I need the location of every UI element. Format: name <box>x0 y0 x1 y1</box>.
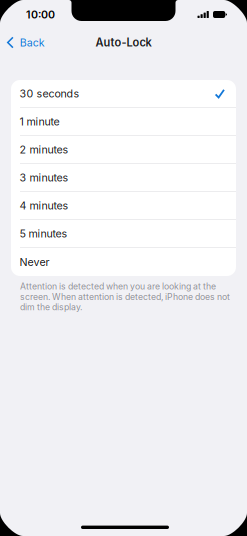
button[interactable]: 30 seconds <box>11 80 236 108</box>
staticText: 5 minutes <box>19 227 67 240</box>
staticText: Back <box>20 36 45 49</box>
staticText: Auto-Lock <box>95 36 151 49</box>
staticText: Never <box>19 255 49 268</box>
staticText: 2 minutes <box>19 143 68 156</box>
staticText: 10:00 <box>26 8 55 21</box>
button[interactable]: 5 minutes <box>11 220 236 248</box>
button[interactable]: 4 minutes <box>11 192 236 220</box>
staticText: Attention is detected when you are looki… <box>20 281 230 312</box>
button[interactable]: Back <box>0 32 45 53</box>
staticText: 1 minute <box>19 115 59 128</box>
button[interactable]: 2 minutes <box>11 136 236 164</box>
staticText: 4 minutes <box>19 199 68 212</box>
button[interactable]: Never <box>11 248 236 276</box>
button[interactable]: 3 minutes <box>11 164 236 192</box>
staticText: 3 minutes <box>19 171 68 184</box>
button[interactable]: 1 minute <box>11 108 236 136</box>
staticText: 30 seconds <box>19 87 79 100</box>
